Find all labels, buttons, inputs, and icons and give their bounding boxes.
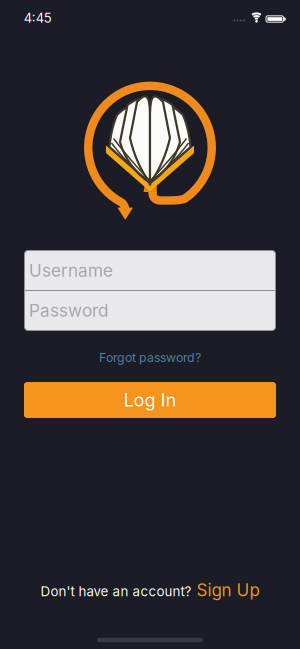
staticText: Don't have an account?: [40, 583, 191, 599]
button[interactable]: Username: [25, 251, 275, 290]
button[interactable]: Sign Up: [196, 580, 259, 600]
button[interactable]: Forgot password?: [99, 350, 201, 365]
staticText: Forgot password?: [99, 350, 201, 365]
button[interactable]: Password: [25, 291, 275, 330]
staticText: Password: [29, 300, 109, 321]
button[interactable]: Log In: [24, 382, 276, 418]
staticText: Log In: [123, 389, 176, 411]
staticText: Username: [29, 260, 113, 281]
staticText: Sign Up: [196, 580, 259, 600]
staticText: 4:45: [24, 10, 52, 26]
